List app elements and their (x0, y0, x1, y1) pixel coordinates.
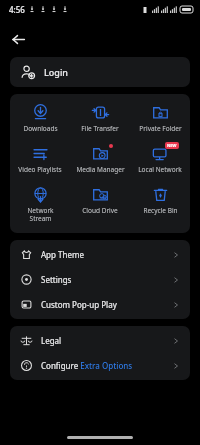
staticText: Configure Extra Options (41, 360, 133, 371)
staticText: Login (44, 66, 68, 78)
button[interactable]: File Transfer (70, 101, 130, 136)
button[interactable]: Downloads (10, 101, 70, 136)
staticText: Local Network (138, 165, 182, 174)
button[interactable]: Settings (10, 267, 190, 292)
button[interactable]: Video Playlists (10, 142, 70, 177)
staticText: Downloads (23, 124, 58, 133)
button[interactable]: NEW (130, 142, 190, 177)
staticText: App Theme (41, 249, 84, 260)
button[interactable]: Cloud Drive (70, 183, 130, 218)
staticText: Recycle Bin (143, 206, 178, 215)
staticText: Media Manager (76, 165, 125, 174)
staticText: Custom Pop-up Play (41, 299, 117, 310)
staticText: 4:56 (9, 4, 25, 15)
button[interactable]: Legal (10, 328, 190, 353)
button[interactable]: Media Manager (70, 142, 130, 177)
button[interactable]: Login (10, 57, 190, 87)
button[interactable]: Recycle Bin (130, 183, 190, 218)
staticText: Video Playlists (18, 165, 62, 174)
button[interactable]: Network Stream (10, 183, 70, 226)
staticText: Private Folder (139, 124, 182, 133)
staticText: Cloud Drive (82, 206, 118, 215)
staticText: File Transfer (81, 124, 119, 133)
button[interactable]: App Theme (10, 242, 190, 267)
button[interactable]: Configure Extra Options (10, 353, 190, 378)
staticText: Legal (41, 335, 62, 346)
button[interactable]: Custom Pop-up Play (10, 292, 190, 317)
staticText: NEW (167, 143, 177, 148)
staticText: Settings (41, 274, 72, 285)
button[interactable]: Back (6, 27, 30, 51)
button[interactable]: Private Folder (130, 101, 190, 136)
staticText: Network Stream (27, 206, 54, 223)
